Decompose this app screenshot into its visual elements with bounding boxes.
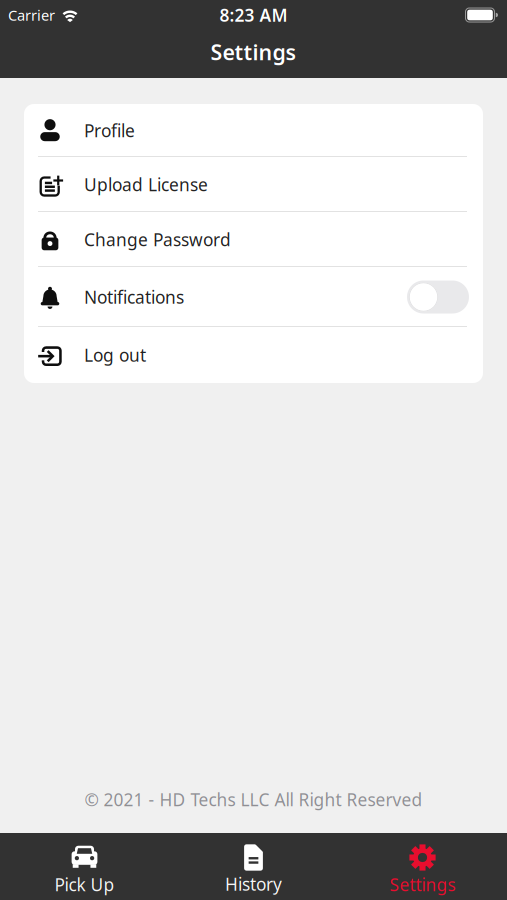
staticText: Notifications	[84, 285, 184, 308]
staticText: Pick Up	[54, 873, 114, 896]
button[interactable]: Notifications toggle	[407, 280, 469, 313]
staticText: Carrier	[8, 5, 55, 25]
button[interactable]: Upload License	[24, 157, 483, 212]
button[interactable]: Log out	[24, 327, 483, 383]
button[interactable]: History	[169, 833, 338, 900]
staticText: Settings	[389, 873, 455, 896]
button[interactable]: Notifications	[24, 267, 483, 327]
button[interactable]: Change Password	[24, 212, 483, 267]
staticText: Change Password	[84, 228, 231, 251]
button[interactable]: Profile	[24, 104, 483, 157]
button[interactable]: Settings	[338, 833, 507, 900]
staticText: © 2021 - HD Techs LLC All Right Reserved	[84, 788, 422, 811]
staticText: Upload License	[84, 173, 208, 196]
button[interactable]: Pick Up	[0, 833, 169, 900]
staticText: Log out	[84, 343, 146, 366]
staticText: 8:23 AM	[219, 3, 287, 26]
staticText: Profile	[84, 119, 135, 142]
staticText: History	[225, 872, 282, 895]
staticText: Settings	[210, 38, 296, 66]
